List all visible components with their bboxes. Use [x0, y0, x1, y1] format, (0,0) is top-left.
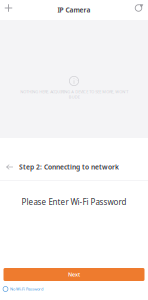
button[interactable]: Refresh — [129, 1, 148, 15]
button[interactable]: Back — [0, 157, 19, 177]
button[interactable]: Next — [3, 268, 144, 281]
button[interactable]: No Wi-Fi Password — [0, 285, 148, 293]
staticText: No Wi-Fi Password — [10, 286, 43, 292]
staticText: Please Enter Wi-Fi Password — [21, 197, 126, 207]
staticText: Next — [68, 271, 80, 278]
staticText: IP Camera — [57, 6, 90, 14]
button[interactable]: Add device — [0, 1, 17, 15]
staticText: Step 2: Connecting to network — [19, 163, 119, 171]
staticText: NOTHING HERE. ACQUIRING A DEVICE TO SEE … — [20, 89, 128, 100]
